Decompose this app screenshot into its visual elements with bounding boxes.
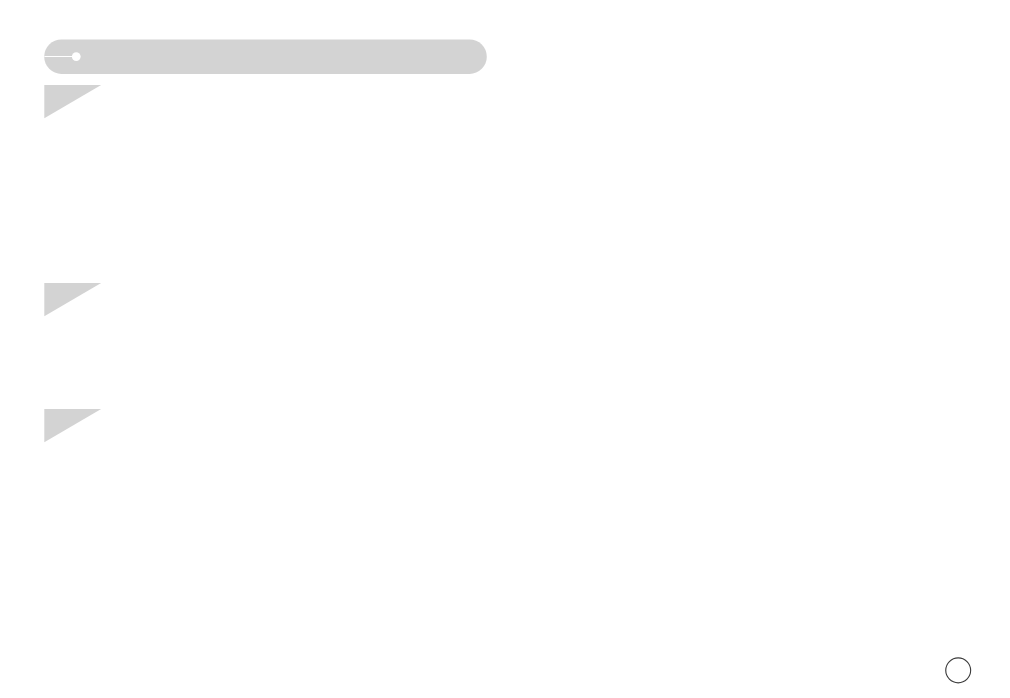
button[interactable]: Slider xyxy=(44,39,487,75)
button[interactable]: First item xyxy=(44,85,101,119)
button[interactable]: Third item xyxy=(44,409,101,443)
button[interactable]: Second item xyxy=(44,283,101,317)
button[interactable]: Add xyxy=(944,656,972,684)
